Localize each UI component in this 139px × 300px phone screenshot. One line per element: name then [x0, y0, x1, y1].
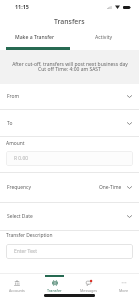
staticText: To [7, 120, 13, 127]
button[interactable]: Accounts [0, 274, 34, 294]
button[interactable]: Transfer [34, 274, 69, 294]
staticText: Frequency [7, 184, 31, 191]
staticText: Cut off Time: 4:00 am SAST [38, 66, 101, 73]
other: Accounts [14, 280, 20, 286]
staticText: Enter Text [14, 248, 37, 255]
staticText: Transfer [47, 288, 62, 293]
button[interactable]: More [104, 274, 139, 294]
button[interactable]: Enter Text [6, 244, 133, 259]
button[interactable]: Messages [69, 274, 104, 294]
button[interactable]: From [0, 84, 139, 110]
staticText: Activity [95, 34, 113, 41]
other: More [121, 280, 127, 286]
staticText: Transfer Description [6, 232, 53, 239]
staticText: R 0.00 [14, 155, 29, 162]
button[interactable]: Activity [69, 31, 139, 50]
staticText: Accounts [9, 288, 25, 293]
staticText: One-Time [99, 184, 122, 191]
button[interactable]: Frequency [0, 173, 139, 203]
button[interactable]: R 0.00 [6, 151, 133, 166]
staticText: Amount [6, 140, 25, 147]
button[interactable]: Make a Transfer [0, 31, 69, 50]
staticText: After cut-off, transfers will post next … [12, 61, 128, 68]
other: Messages [86, 280, 92, 286]
button[interactable]: Select Date [0, 203, 139, 231]
staticText: Make a Transfer [15, 34, 55, 41]
staticText: Transfers [54, 17, 85, 26]
other: Transfer [52, 280, 58, 286]
staticText: 11:15 [15, 3, 29, 10]
button[interactable]: To [0, 110, 139, 137]
staticText: Messages [80, 288, 98, 293]
staticText: More [119, 288, 129, 293]
staticText: From [7, 93, 19, 100]
staticText: Select Date [7, 213, 33, 220]
